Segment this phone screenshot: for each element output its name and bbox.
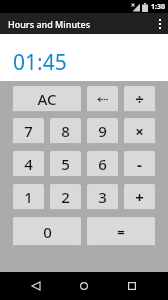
- staticText: =: [117, 223, 125, 241]
- staticText: 01:45: [13, 48, 67, 77]
- staticText: ×: [135, 121, 144, 141]
- button[interactable]: 6: [87, 151, 118, 177]
- button[interactable]: [159, 19, 161, 29]
- staticText: ÷: [135, 89, 144, 109]
- button[interactable]: AC: [13, 86, 81, 112]
- button[interactable]: 1: [13, 184, 44, 210]
- staticText: 8: [61, 121, 70, 141]
- staticText: 7: [24, 121, 33, 141]
- button[interactable]: [120, 274, 144, 298]
- button[interactable]: 0: [13, 217, 81, 246]
- staticText: 1:30: [151, 2, 165, 12]
- staticText: Hours and Minutes: [8, 18, 91, 30]
- staticText: 5: [61, 154, 70, 174]
- button[interactable]: -: [124, 151, 155, 177]
- button[interactable]: [87, 86, 118, 112]
- staticText: -: [137, 154, 142, 174]
- button[interactable]: [72, 274, 96, 298]
- button[interactable]: 9: [87, 118, 118, 144]
- staticText: AC: [37, 89, 57, 109]
- button[interactable]: =: [87, 217, 155, 246]
- staticText: 1: [24, 187, 33, 207]
- button[interactable]: 4: [13, 151, 44, 177]
- staticText: 0: [43, 222, 52, 242]
- button[interactable]: +: [124, 184, 155, 210]
- staticText: 9: [98, 121, 107, 141]
- button[interactable]: 8: [50, 118, 81, 144]
- button[interactable]: 2: [50, 184, 81, 210]
- button[interactable]: ×: [124, 118, 155, 144]
- staticText: +: [135, 187, 144, 207]
- staticText: 4: [24, 154, 33, 174]
- button[interactable]: ÷: [124, 86, 155, 112]
- button[interactable]: [24, 274, 48, 298]
- staticText: 3: [98, 187, 107, 207]
- button[interactable]: 5: [50, 151, 81, 177]
- button[interactable]: 3: [87, 184, 118, 210]
- button[interactable]: 7: [13, 118, 44, 144]
- staticText: 6: [98, 154, 107, 174]
- staticText: 2: [61, 187, 70, 207]
